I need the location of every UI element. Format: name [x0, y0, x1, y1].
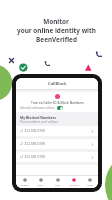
staticText: Search: [21, 183, 29, 186]
staticText: Alerts: [37, 183, 44, 186]
button[interactable]: +1 212-555-0199: [16, 139, 98, 149]
staticText: CallBlock: [48, 81, 67, 87]
button[interactable]: Contacts: [66, 177, 81, 187]
button[interactable]: More: [82, 177, 97, 187]
staticText: BeenVerified: [36, 35, 77, 44]
staticText: Turn on Caller ID & Block Numbers: [31, 101, 84, 105]
staticText: +1 212-555-0199: [20, 129, 45, 133]
staticText: +1 212-555-0199: [20, 142, 45, 146]
staticText: These numbers can't call you: [20, 120, 59, 124]
staticText: your online identity with: [17, 26, 96, 35]
staticText: Identify unknown callers: [20, 106, 55, 110]
staticText: Contacts: [69, 183, 79, 186]
button[interactable]: Alerts: [33, 177, 48, 187]
button[interactable]: +1 212-555-0199: [16, 152, 98, 162]
staticText: More: [87, 183, 93, 186]
staticText: +1 212-555-0199: [20, 155, 45, 159]
staticText: Calls: [55, 183, 61, 186]
button[interactable]: Search: [17, 177, 32, 187]
staticText: My Blocked Numbers: [20, 115, 56, 120]
button[interactable]: +1 212-555-0199: [16, 126, 98, 136]
staticText: Monitor: [43, 17, 69, 26]
button[interactable]: Calls: [50, 177, 65, 187]
button[interactable]: Toggle caller ID: [57, 106, 63, 110]
